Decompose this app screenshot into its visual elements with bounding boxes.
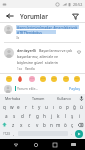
staticText: w xyxy=(10,104,14,110)
button[interactable]: x xyxy=(17,120,25,129)
staticText: z xyxy=(12,122,15,128)
staticText: Paylaş xyxy=(69,86,80,91)
button[interactable]: n xyxy=(48,120,55,129)
button[interactable]: k xyxy=(55,111,62,120)
button[interactable]: w xyxy=(8,102,15,111)
staticText: Başarılarınızı ve çok xyxy=(39,48,73,53)
button[interactable]: i xyxy=(76,111,83,120)
button[interactable]: r xyxy=(22,102,29,111)
staticText: ğ xyxy=(73,104,76,110)
button[interactable]: m xyxy=(55,120,62,129)
staticText: e xyxy=(17,104,20,110)
staticText: h xyxy=(43,113,46,119)
button[interactable]: d xyxy=(18,111,26,120)
staticText: , xyxy=(13,131,15,137)
staticText: başarılarınız, ailenizle ve çalışmanızı … xyxy=(17,54,76,59)
button[interactable]: h xyxy=(41,111,48,120)
button[interactable]: g xyxy=(34,111,41,120)
button[interactable]: q xyxy=(0,102,8,111)
button[interactable]: ?123 xyxy=(1,129,11,138)
button[interactable]: j xyxy=(48,111,55,120)
button[interactable]: Paylaş xyxy=(68,86,81,91)
staticText: m xyxy=(56,122,61,128)
button[interactable]: b xyxy=(41,120,48,129)
staticText: q xyxy=(3,104,6,110)
button[interactable]: Emoji xyxy=(62,75,69,82)
staticText: 3s xyxy=(16,36,20,40)
staticText: deniizyerlli xyxy=(17,48,37,53)
staticText: s xyxy=(13,113,16,119)
button[interactable]: a xyxy=(2,111,10,120)
button[interactable]: t xyxy=(29,102,36,111)
button[interactable]: ğ xyxy=(71,102,78,111)
button[interactable]: Nokta xyxy=(69,129,75,138)
button[interactable]: c xyxy=(25,120,33,129)
staticText: Kullanıcı xyxy=(57,96,72,101)
staticText: a xyxy=(5,113,8,119)
button[interactable]: ı xyxy=(50,102,57,111)
staticText: ç xyxy=(71,122,74,128)
button[interactable]: Shift xyxy=(0,120,9,129)
staticText: Tamam xyxy=(32,96,45,101)
button[interactable]: Geri xyxy=(10,139,21,150)
button[interactable]: l xyxy=(62,111,69,120)
staticText: böylesine güzel sözlerin xyxy=(17,60,59,65)
button[interactable]: Gönder xyxy=(75,130,83,138)
button[interactable]: ü xyxy=(78,102,85,111)
staticText: x xyxy=(20,122,23,128)
staticText: b xyxy=(43,122,46,128)
staticText: p xyxy=(66,104,69,110)
button[interactable]: v xyxy=(33,120,41,129)
button[interactable]: p xyxy=(64,102,71,111)
button[interactable]: e xyxy=(15,102,22,111)
button[interactable]: f xyxy=(26,111,34,120)
staticText: 1sa xyxy=(17,67,22,71)
button[interactable]: Beğen xyxy=(76,49,82,55)
staticText: ş xyxy=(71,113,74,119)
staticText: l xyxy=(65,113,67,119)
button[interactable]: Tamam xyxy=(25,94,51,102)
button[interactable]: Klavye xyxy=(68,139,79,150)
button[interactable]: Emoji xyxy=(50,75,57,82)
button[interactable]: o xyxy=(57,102,64,111)
button[interactable]: deniizyerlli xyxy=(0,45,85,73)
button[interactable]: Yorum ekle... xyxy=(15,86,68,91)
staticText: . xyxy=(71,131,73,137)
button[interactable]: Emoji xyxy=(73,75,80,82)
button[interactable]: Virgül xyxy=(11,129,17,138)
button[interactable]: Emoji xyxy=(39,75,46,82)
button[interactable]: Sesle yaz xyxy=(77,94,85,102)
button[interactable]: Emoji xyxy=(5,75,12,82)
button[interactable]: Emoji xyxy=(28,75,35,82)
staticText: u xyxy=(45,104,48,110)
staticText: o xyxy=(59,104,62,110)
button[interactable]: Geri xyxy=(4,10,16,22)
button[interactable]: y xyxy=(36,102,43,111)
button[interactable]: s xyxy=(10,111,18,120)
button[interactable]: #gençlerimizolmadan #memleketyok xyxy=(0,23,85,45)
button[interactable]: Emoji xyxy=(16,75,23,82)
button[interactable]: Sil xyxy=(76,120,85,129)
button[interactable]: Merhaba xyxy=(0,94,25,102)
button[interactable]: Yanıtla xyxy=(25,67,35,71)
button[interactable]: ö xyxy=(62,120,69,129)
button[interactable]: Filtrele xyxy=(69,10,81,22)
staticText: n xyxy=(50,122,53,128)
staticText: Yorumlar xyxy=(20,12,48,20)
button[interactable]: Son kullanılanlar xyxy=(49,139,60,150)
button[interactable]: Kullanıcı xyxy=(51,94,77,102)
button[interactable]: ş xyxy=(69,111,76,120)
staticText: Yorum ekle... xyxy=(17,86,39,91)
button[interactable]: Ana ekran xyxy=(30,139,41,150)
staticText: 20:52 xyxy=(73,2,83,7)
button[interactable]: u xyxy=(43,102,50,111)
staticText: ö xyxy=(64,122,67,128)
button[interactable]: ç xyxy=(69,120,76,129)
staticText: d xyxy=(21,113,24,119)
staticText: v xyxy=(36,122,39,128)
button[interactable]: z xyxy=(9,120,17,129)
staticText: j xyxy=(51,113,53,119)
staticText: r xyxy=(25,104,27,110)
staticText: k xyxy=(57,113,60,119)
